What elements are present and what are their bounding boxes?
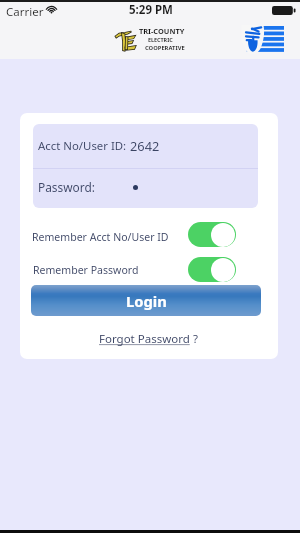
button[interactable]: Password:: [33, 169, 258, 208]
staticText: Forgot Password: [99, 331, 190, 347]
staticText: Password:: [38, 179, 95, 195]
staticText: ?: [190, 331, 198, 347]
staticText: Remember Acct No/User ID: [32, 230, 169, 244]
staticText: ELECTRIC: [148, 36, 173, 43]
button[interactable]: Menu: [246, 26, 284, 52]
staticText: TRI-COUNTY: [139, 26, 185, 36]
button[interactable]: Forgot Password: [99, 331, 198, 347]
staticText: Remember Password: [33, 263, 139, 277]
staticText: Login: [126, 291, 167, 311]
staticText: COOPERATIVE: [145, 44, 185, 52]
button[interactable]: Acct No/User ID:: [33, 124, 258, 168]
button[interactable]: Remember Acct No/User ID: [188, 222, 236, 247]
staticText: Acct No/User ID:: [38, 138, 127, 154]
staticText: 2642: [130, 137, 160, 154]
staticText: Carrier: [6, 4, 44, 20]
staticText: 5:29 PM: [129, 2, 173, 18]
button[interactable]: Remember Password: [188, 257, 236, 282]
button[interactable]: Login: [31, 285, 261, 316]
